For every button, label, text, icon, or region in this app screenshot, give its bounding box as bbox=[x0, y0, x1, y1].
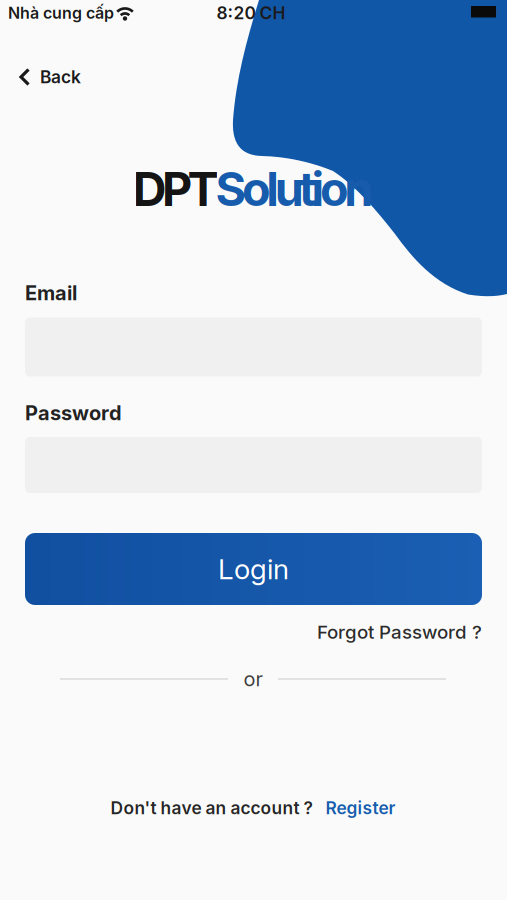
button[interactable]: Back bbox=[19, 67, 81, 87]
staticText: Back bbox=[40, 67, 81, 87]
button[interactable]: Login bbox=[25, 533, 482, 605]
staticText: or bbox=[243, 667, 262, 691]
staticText: Nhà cung cấp bbox=[8, 4, 114, 22]
staticText: 8:20 CH bbox=[216, 3, 285, 23]
staticText: Register bbox=[325, 798, 395, 818]
staticText: DPT bbox=[133, 161, 218, 217]
button[interactable]: Forgot Password ? bbox=[317, 621, 482, 643]
staticText: Password bbox=[25, 401, 122, 425]
staticText: Email bbox=[25, 281, 77, 305]
staticText: Don't have an account ? bbox=[110, 798, 312, 818]
button[interactable]: Register bbox=[325, 798, 395, 818]
staticText: Solution bbox=[215, 161, 373, 217]
staticText: Forgot Password ? bbox=[317, 621, 482, 643]
staticText: Login bbox=[218, 552, 289, 585]
